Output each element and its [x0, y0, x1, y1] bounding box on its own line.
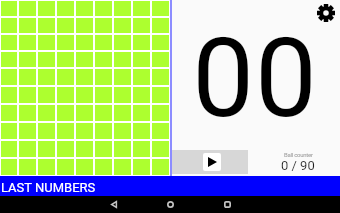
staticText: 00 — [192, 14, 318, 143]
button[interactable]: Back — [100, 196, 127, 213]
button[interactable]: Home — [157, 196, 184, 213]
button[interactable]: LAST NUMBERS — [0, 176, 340, 196]
button[interactable]: Play — [172, 150, 248, 174]
button[interactable]: Recents — [214, 196, 241, 213]
staticText: LAST NUMBERS — [1, 180, 96, 195]
button[interactable]: Settings — [317, 4, 335, 22]
staticText: Ball counter — [284, 151, 313, 158]
staticText: 0 / 90 — [281, 158, 315, 173]
